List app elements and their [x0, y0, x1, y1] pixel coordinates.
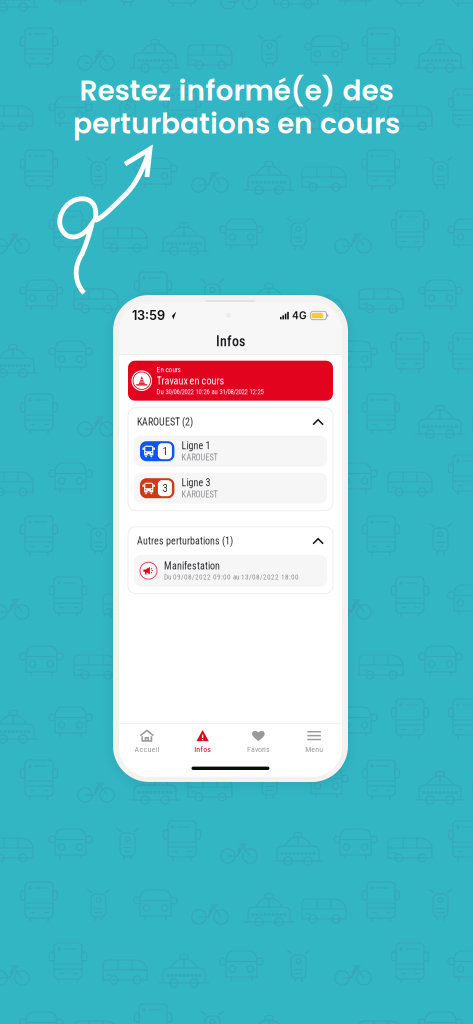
- button[interactable]: Autres perturbations (1): [134, 534, 327, 549]
- staticText: Favoris: [247, 745, 270, 754]
- button[interactable]: Infos: [175, 724, 231, 759]
- staticText: Menu: [305, 745, 323, 754]
- button[interactable]: Manifestation: [134, 555, 327, 587]
- staticText: Restez informé(e) des: [79, 71, 393, 110]
- staticText: Du 30/06/2022 10:26 au 31/08/2022 12:25: [156, 388, 263, 396]
- staticText: Autres perturbations (1): [137, 535, 233, 547]
- staticText: 3: [162, 482, 167, 495]
- button[interactable]: Accueil: [119, 724, 175, 759]
- button[interactable]: Favoris: [230, 724, 286, 759]
- staticText: perturbations en cours: [73, 104, 400, 143]
- staticText: Travaux en cours: [156, 375, 224, 387]
- staticText: Infos: [216, 333, 245, 350]
- staticText: 4G: [292, 309, 307, 322]
- button[interactable]: 1: [134, 436, 327, 467]
- staticText: KAROUEST (2): [137, 416, 193, 428]
- button[interactable]: Menu: [286, 724, 342, 759]
- staticText: Manifestation: [164, 560, 220, 572]
- staticText: En cours: [156, 366, 180, 374]
- staticText: KAROUEST: [181, 453, 217, 462]
- staticText: Ligne 1: [181, 440, 210, 452]
- staticText: 13:59: [132, 308, 165, 323]
- staticText: KAROUEST: [181, 490, 217, 499]
- button[interactable]: En cours: [128, 361, 333, 401]
- staticText: Du 09/08/2022 09:00 au 13/08/2022 18:00: [164, 573, 299, 581]
- staticText: 1: [162, 445, 167, 458]
- button[interactable]: KAROUEST (2): [134, 415, 327, 430]
- staticText: Ligne 3: [181, 477, 210, 489]
- staticText: Accueil: [134, 745, 159, 754]
- staticText: Infos: [194, 745, 211, 754]
- button[interactable]: 3: [134, 473, 327, 504]
